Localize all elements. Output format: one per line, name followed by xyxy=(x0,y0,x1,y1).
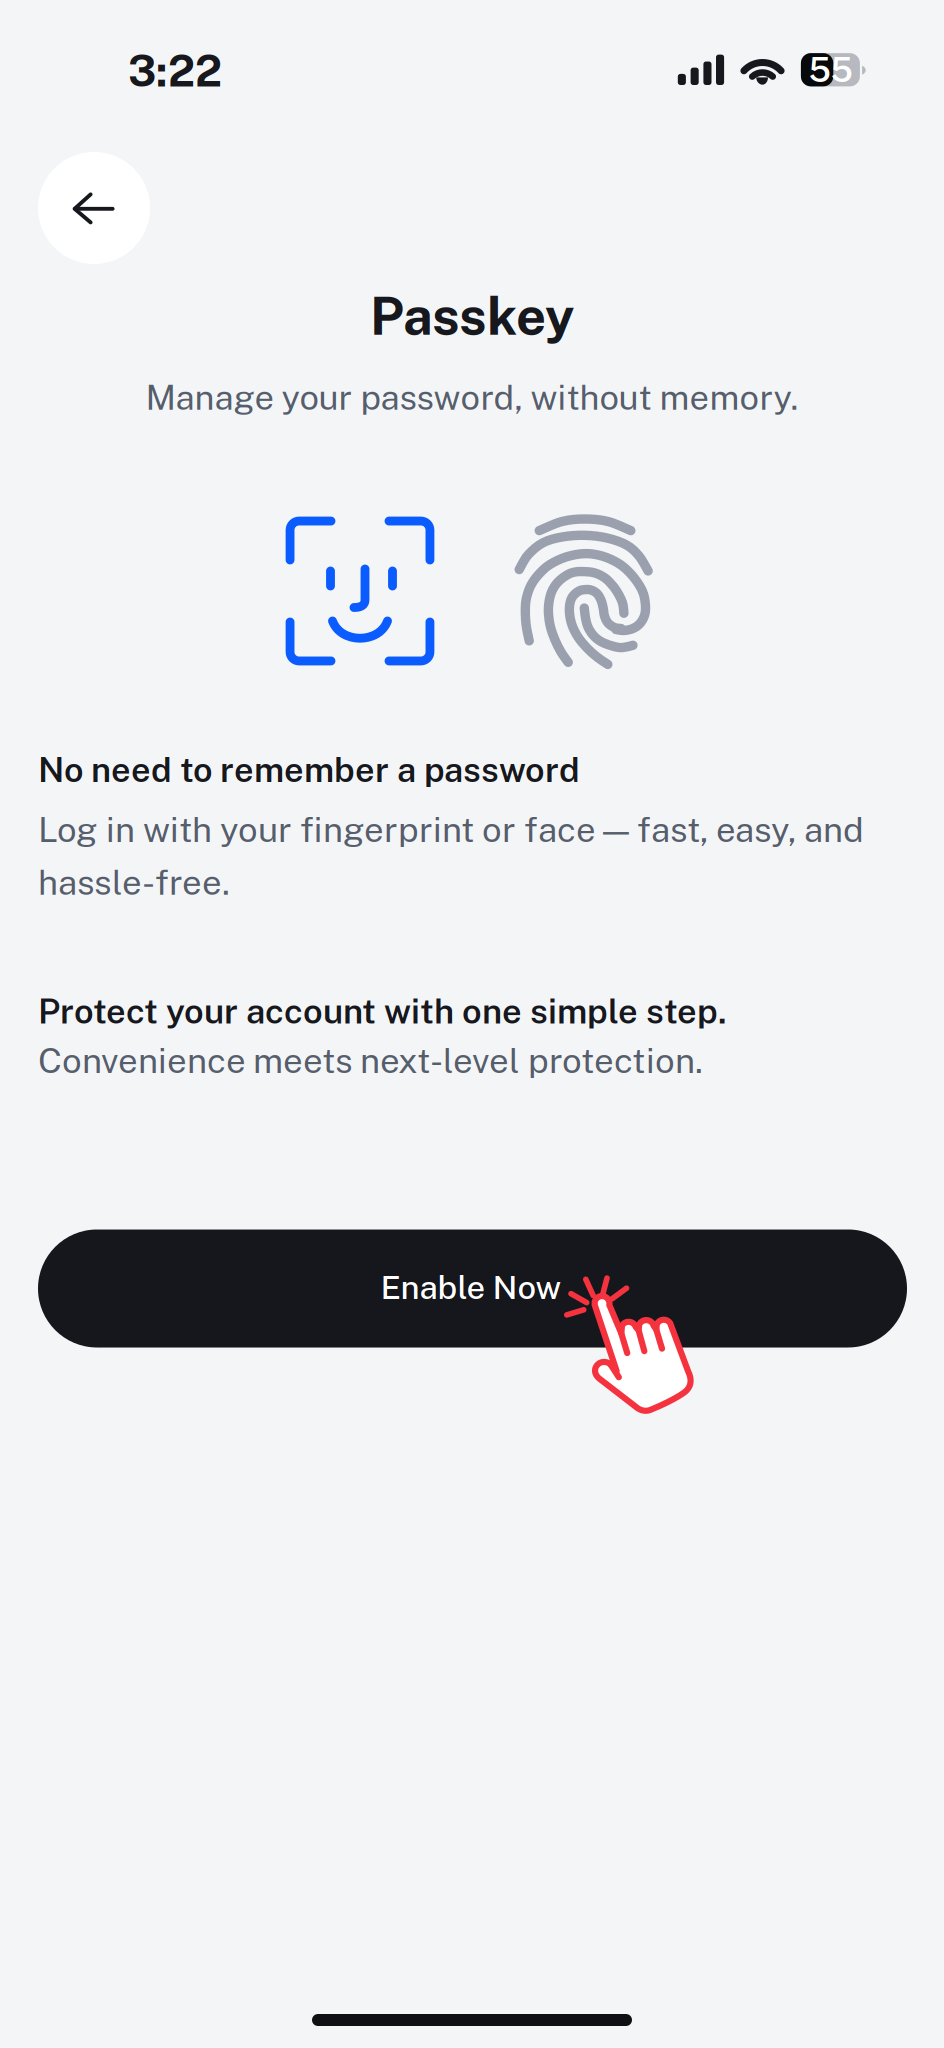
staticText: Protect your account with one simple ste… xyxy=(38,991,727,1031)
button[interactable]: Back xyxy=(38,152,150,264)
staticText: Passkey xyxy=(370,285,574,346)
staticText: Convenience meets next-level protection. xyxy=(38,1040,703,1081)
staticText: No need to remember a password xyxy=(38,749,580,790)
staticText: Manage your password, without memory. xyxy=(145,377,798,418)
button[interactable]: Enable Now xyxy=(38,1229,907,1347)
staticText: 3:22 xyxy=(128,46,222,96)
staticText: Enable Now xyxy=(380,1268,561,1306)
staticText: Log in with your fingerprint or face — f… xyxy=(38,809,864,902)
staticText: 55 xyxy=(808,50,852,90)
